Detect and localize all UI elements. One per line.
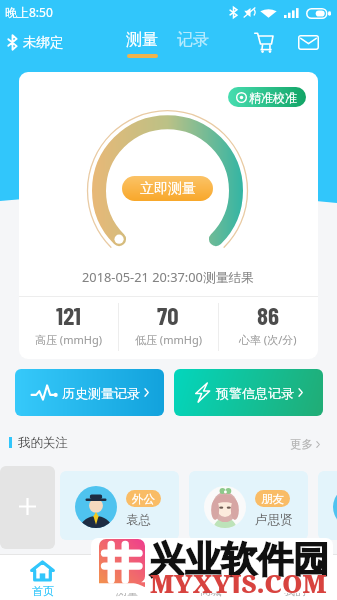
button[interactable]: 更多 <box>288 435 322 453</box>
staticText: 我的 <box>284 584 306 598</box>
staticText: 外公 <box>132 492 155 506</box>
staticText: 历史测量记录 <box>62 385 140 401</box>
button[interactable]: 首页 <box>0 555 85 600</box>
staticText: 未绑定 <box>23 34 64 51</box>
staticText: 兴业软件园 <box>149 538 329 582</box>
staticText: 测量 <box>116 584 138 598</box>
button[interactable]: 历史测量记录 <box>15 369 164 416</box>
button[interactable]: 预警信息记录 <box>174 369 323 416</box>
button[interactable]: 测量 <box>85 555 169 600</box>
staticText: 测量 <box>126 30 158 50</box>
button[interactable]: 同事 <box>318 471 337 540</box>
button[interactable]: 记录 <box>171 30 215 50</box>
staticText: 121 <box>56 300 81 330</box>
button[interactable]: 86 <box>218 297 318 359</box>
button[interactable]: 外公 <box>60 471 179 540</box>
button[interactable]: Shop <box>248 27 278 57</box>
button[interactable]: 朋友 <box>189 471 308 540</box>
staticText: 朋友 <box>261 492 284 506</box>
button[interactable]: 立即测量 <box>122 176 213 201</box>
button[interactable]: Messages <box>293 27 323 57</box>
staticText: 心率 (次/分) <box>239 332 297 347</box>
staticText: 2018-05-21 20:37:00测量结果 <box>82 268 255 285</box>
staticText: 晚上8:50 <box>5 4 53 20</box>
button[interactable]: 商城 <box>169 555 253 600</box>
staticText: 记录 <box>177 30 209 50</box>
staticText: 预警信息记录 <box>216 385 294 401</box>
button[interactable]: 121 <box>19 297 118 359</box>
staticText: 卢思贤 <box>255 512 293 528</box>
staticText: 商城 <box>200 584 222 598</box>
staticText: 更多 <box>290 437 313 451</box>
button[interactable]: 未绑定 <box>5 32 66 53</box>
button[interactable]: 精准校准 <box>228 87 306 107</box>
staticText: 我的关注 <box>18 435 68 451</box>
staticText: 精准校准 <box>249 90 297 105</box>
staticText: 高压 (mmHg) <box>35 332 102 347</box>
staticText: 袁总 <box>126 512 151 528</box>
staticText: 立即测量 <box>140 180 196 198</box>
staticText: 70 <box>157 300 179 330</box>
staticText: 低压 (mmHg) <box>135 332 202 347</box>
staticText: MYXYJS.COM <box>150 566 327 593</box>
button[interactable]: 70 <box>118 297 218 359</box>
button[interactable]: 测量 <box>120 30 164 58</box>
button[interactable]: 我的 <box>253 555 337 600</box>
button[interactable]: Add person <box>0 466 55 549</box>
staticText: 首页 <box>32 584 54 598</box>
staticText: 86 <box>257 300 280 330</box>
